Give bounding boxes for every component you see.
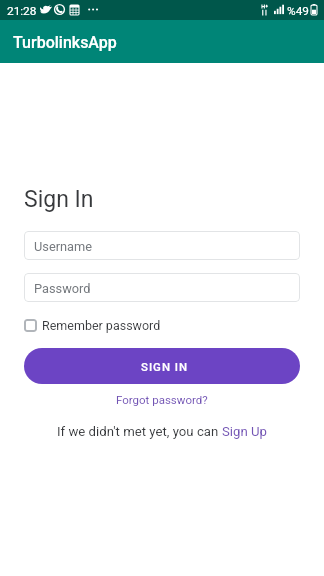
button[interactable]: SIGN IN [24, 348, 300, 384]
staticText: Password [34, 281, 91, 296]
button[interactable]: Forgot password? [116, 393, 208, 406]
staticText: Sign In [24, 186, 94, 213]
button[interactable]: Username [24, 231, 300, 260]
staticText: 21:28 [7, 4, 37, 18]
button[interactable]: Remember password [24, 318, 161, 333]
staticText: TurbolinksApp [13, 33, 117, 52]
staticText: SIGN IN [141, 360, 189, 373]
staticText: If we didn't met yet, you can [57, 424, 222, 439]
staticText: Remember password [42, 318, 161, 333]
staticText: Username [34, 239, 93, 254]
staticText: %49 [287, 4, 309, 18]
button[interactable]: Password [24, 273, 300, 302]
button[interactable]: Sign Up [222, 424, 267, 439]
